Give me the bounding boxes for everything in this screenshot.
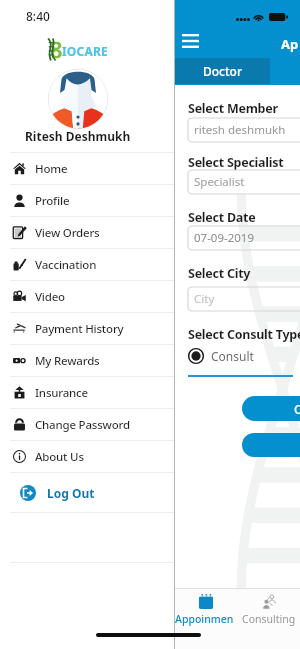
button[interactable]: City xyxy=(188,287,300,311)
staticText: Insurance xyxy=(35,385,88,401)
button[interactable]: Doctor xyxy=(175,58,270,84)
button[interactable]: Consulting xyxy=(237,589,300,629)
button[interactable]: Video xyxy=(0,281,174,312)
button[interactable]: Appoinment xyxy=(175,589,237,629)
staticText: Select City xyxy=(188,265,251,282)
button[interactable]: Home xyxy=(0,153,174,184)
staticText: About Us xyxy=(35,449,84,465)
staticText: Consulting xyxy=(242,612,296,626)
button[interactable]: Consult xyxy=(188,347,254,364)
staticText: Payment History xyxy=(35,321,124,337)
staticText: Doctor xyxy=(203,63,243,79)
button[interactable]: Specialist xyxy=(188,170,300,194)
staticText: Select Consult Type xyxy=(188,326,300,343)
button[interactable]: About Us xyxy=(0,441,174,472)
staticText: Specialist xyxy=(194,174,245,190)
button[interactable]: Payment History xyxy=(0,313,174,344)
staticText: Consult xyxy=(211,348,254,364)
staticText: IOCARE xyxy=(62,43,108,59)
staticText: 07-09-2019 xyxy=(194,230,255,246)
staticText: 8:40 xyxy=(26,8,50,24)
button[interactable]: Insurance xyxy=(0,377,174,408)
button[interactable]: View Orders xyxy=(0,217,174,248)
button[interactable]: Log Out xyxy=(0,473,174,512)
staticText: Profile xyxy=(35,193,70,209)
staticText: Select Specialist xyxy=(188,154,284,171)
staticText: Ap xyxy=(281,35,299,53)
button[interactable]: Vaccination xyxy=(0,249,174,280)
button[interactable]: 07-09-2019 xyxy=(188,226,300,250)
button[interactable]: Open navigation menu xyxy=(177,28,203,54)
staticText: Video xyxy=(35,289,65,305)
button[interactable]: Change Password xyxy=(0,409,174,440)
staticText: View Orders xyxy=(35,225,100,241)
staticText: City xyxy=(194,291,215,307)
button[interactable] xyxy=(242,433,300,457)
button[interactable]: C xyxy=(242,396,300,421)
staticText: Vaccination xyxy=(35,257,97,273)
staticText: Appoinment xyxy=(175,612,237,629)
staticText: Select Member xyxy=(188,100,278,117)
button[interactable]: ritesh deshmukh xyxy=(188,118,300,142)
staticText: ritesh deshmukh xyxy=(194,122,286,138)
button[interactable]: My Rewards xyxy=(0,345,174,376)
staticText: Ritesh Deshmukh xyxy=(25,128,131,144)
staticText: My Rewards xyxy=(35,353,100,369)
staticText: Home xyxy=(35,161,68,177)
staticText: C xyxy=(294,401,300,417)
staticText: Change Password xyxy=(35,417,130,433)
staticText: Select Date xyxy=(188,209,256,226)
staticText: Log Out xyxy=(47,485,95,501)
button[interactable]: Profile xyxy=(0,185,174,216)
